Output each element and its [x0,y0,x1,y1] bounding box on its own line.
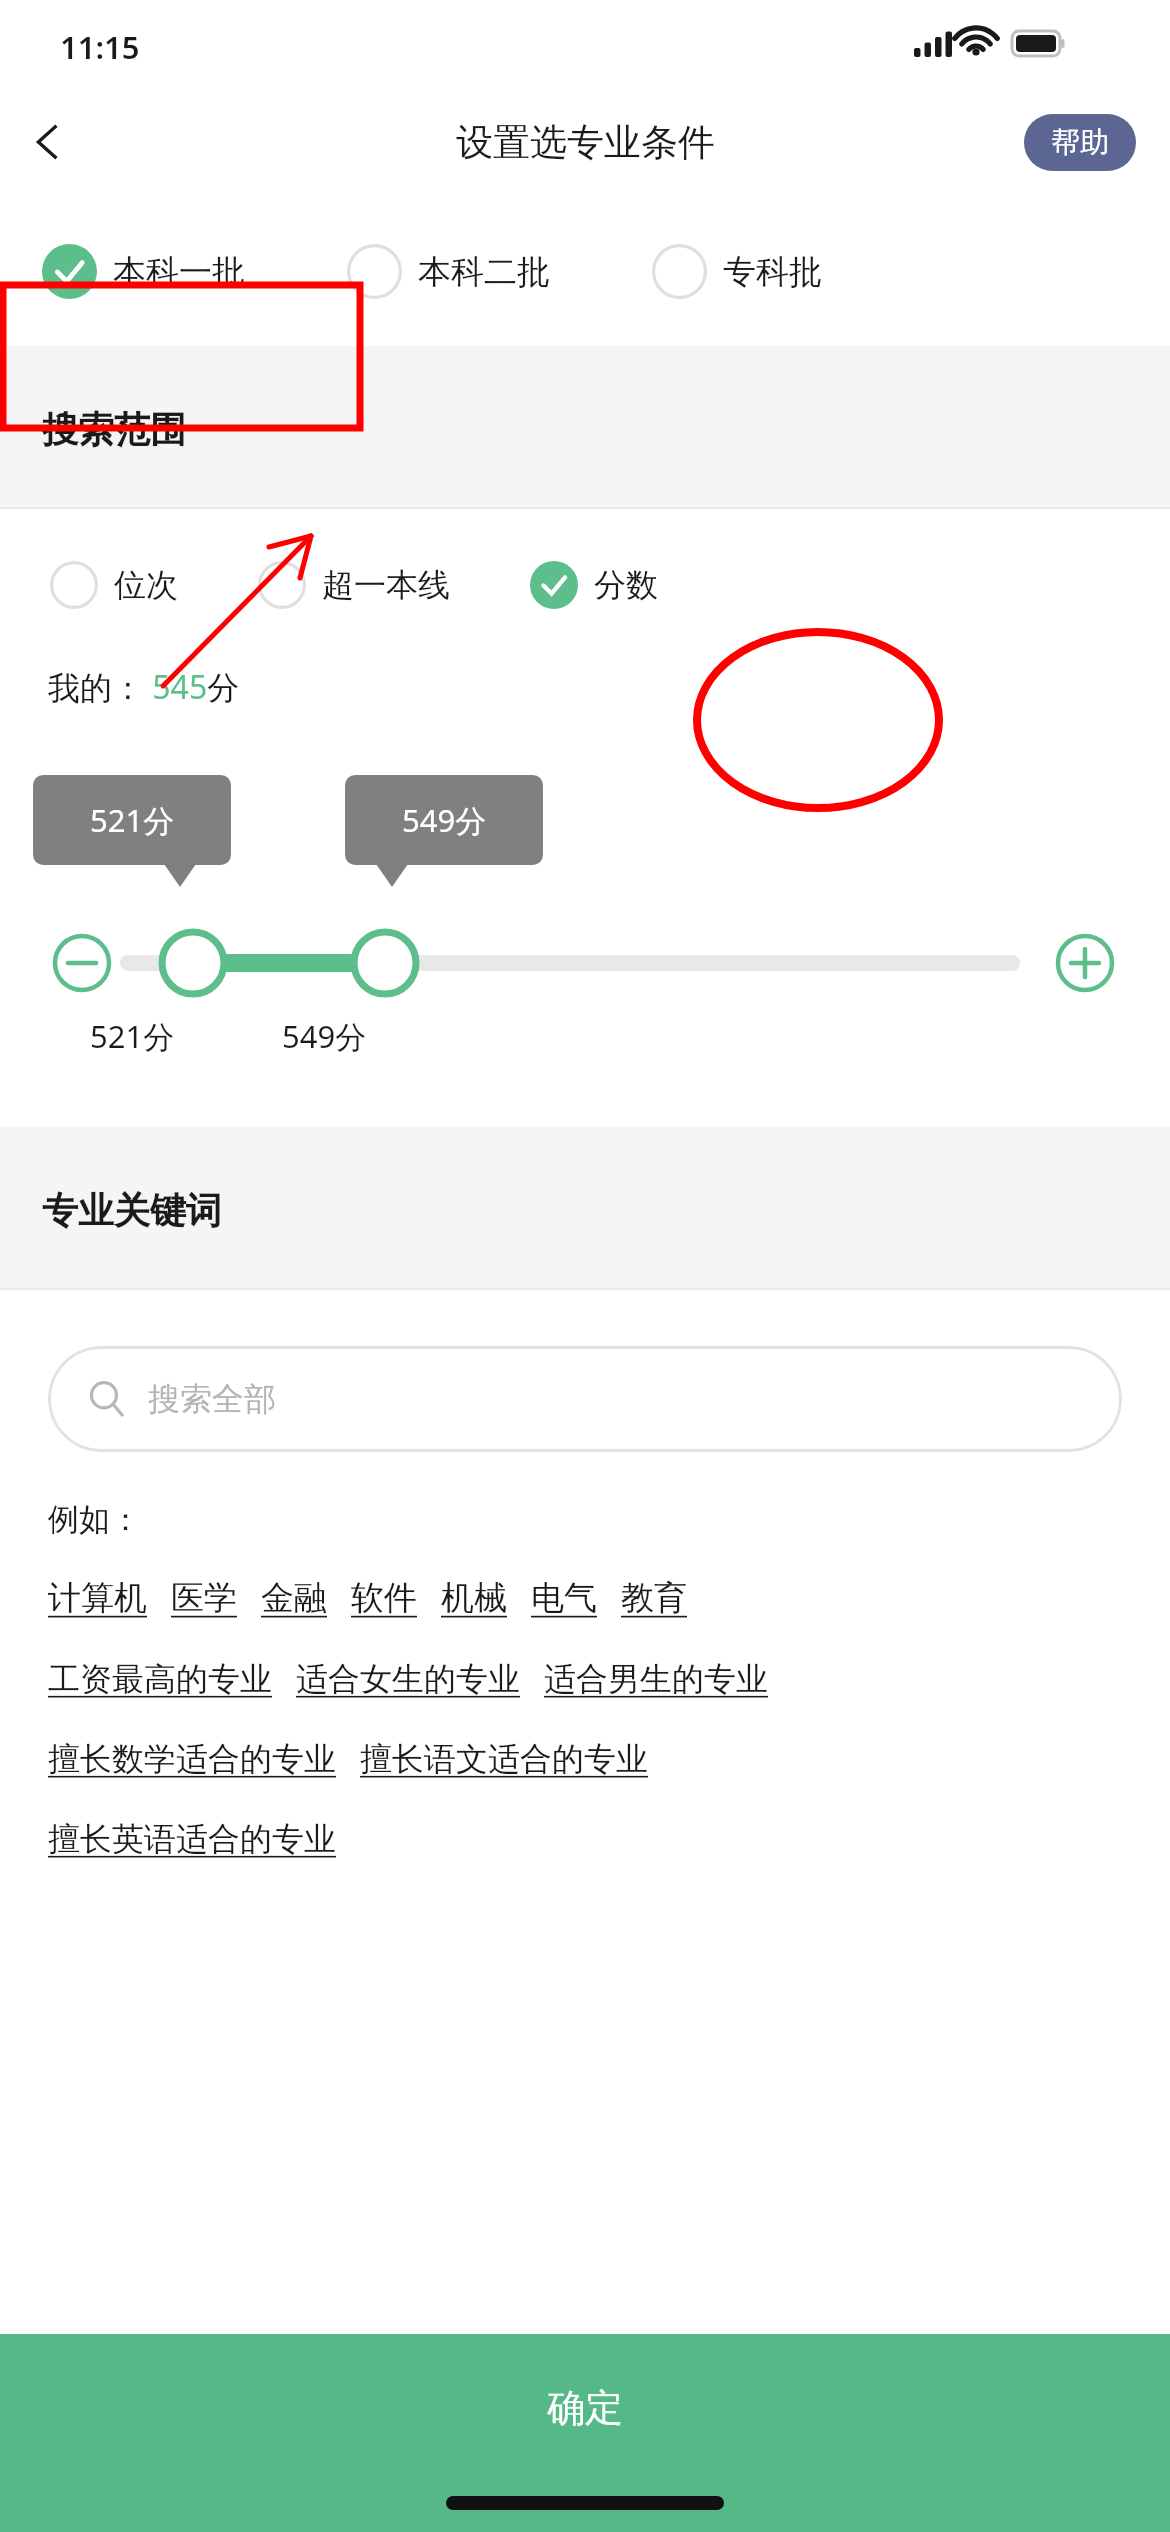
staticText: 搜索范围 [42,407,186,452]
staticText: 549分 [402,799,487,841]
staticText: 本科一批 [113,251,245,293]
staticText: 例如： [48,1500,141,1539]
staticText: 教育 [621,1577,687,1619]
button[interactable]: 专科批 [652,244,822,299]
staticText: 超一本线 [322,565,450,605]
staticText: 擅长英语适合的专业 [48,1819,336,1859]
button[interactable]: 适合男生的专业 [544,1651,768,1707]
staticText: 11:15 [60,26,140,68]
staticText: 工资最高的专业 [48,1659,272,1699]
button[interactable]: Back [0,94,96,190]
staticText: 521分 [90,799,175,841]
button[interactable]: 位次 [50,561,178,609]
button[interactable]: 适合女生的专业 [296,1651,520,1707]
staticText: 确定 [547,2384,623,2432]
button[interactable]: 超一本线 [258,561,450,609]
staticText: 帮助 [1051,124,1109,161]
button[interactable]: 擅长语文适合的专业 [360,1731,648,1787]
button[interactable]: 软件 [351,1569,417,1627]
button[interactable]: 教育 [621,1569,687,1627]
staticText: 位次 [114,565,178,605]
button[interactable]: 擅长英语适合的专业 [48,1811,336,1867]
staticText: 分数 [594,565,658,605]
button[interactable]: 本科二批 [347,244,550,299]
button[interactable]: 搜索全部 [48,1346,1122,1452]
staticText: 软件 [351,1577,417,1619]
button[interactable]: 帮助 [1024,114,1136,171]
button[interactable]: 医学 [171,1569,237,1627]
staticText: 适合女生的专业 [296,1659,520,1699]
button[interactable]: 计算机 [48,1569,147,1627]
button[interactable]: 本科一批 [42,244,245,299]
staticText: 设置选专业条件 [456,119,715,166]
staticText: 549分 [282,1015,367,1057]
button[interactable]: 分数 [530,561,658,609]
staticText: 机械 [441,1577,507,1619]
staticText: 电气 [531,1577,597,1619]
staticText: 适合男生的专业 [544,1659,768,1699]
button[interactable]: 擅长数学适合的专业 [48,1731,336,1787]
staticText: 金融 [261,1577,327,1619]
button[interactable]: Increase [1051,929,1119,997]
staticText: 擅长语文适合的专业 [360,1739,648,1779]
staticText: 计算机 [48,1577,147,1619]
staticText: 医学 [171,1577,237,1619]
button[interactable]: 工资最高的专业 [48,1651,272,1707]
staticText: 搜索全部 [148,1379,276,1419]
staticText: 专科批 [723,251,822,293]
button[interactable]: 电气 [531,1569,597,1627]
button[interactable]: 确定 [0,2334,1170,2532]
button[interactable]: 金融 [261,1569,327,1627]
staticText: 本科二批 [418,251,550,293]
staticText: 我的： 545分 [48,665,240,709]
staticText: 专业关键词 [42,1188,222,1233]
button[interactable]: 机械 [441,1569,507,1627]
staticText: 擅长数学适合的专业 [48,1739,336,1779]
button[interactable]: Decrease [48,929,116,997]
staticText: 521分 [90,1015,175,1057]
